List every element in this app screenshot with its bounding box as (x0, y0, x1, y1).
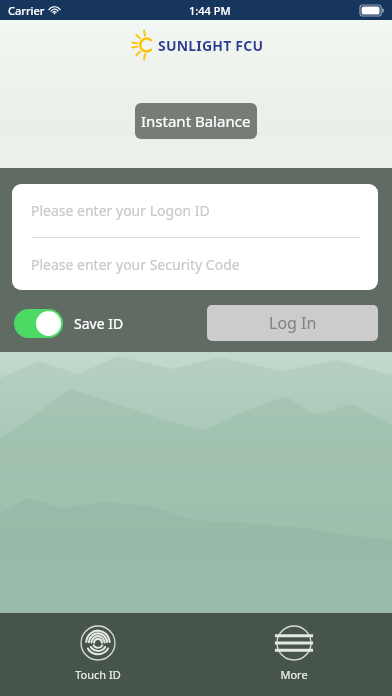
button[interactable]: Save ID (14, 309, 124, 338)
button[interactable]: Please enter your Security Code (12, 238, 378, 290)
staticText: Touch ID (75, 667, 121, 682)
staticText: SUNLIGHT FCU (158, 36, 264, 55)
staticText: 1:44 PM (189, 3, 231, 18)
staticText: More (280, 667, 308, 682)
button[interactable]: Log In (207, 305, 378, 341)
staticText: Please enter your Security Code (31, 255, 240, 274)
button[interactable]: Please enter your Logon ID (12, 184, 378, 237)
staticText: Please enter your Logon ID (31, 201, 210, 220)
staticText: Carrier (8, 3, 45, 18)
staticText: Save ID (74, 314, 124, 333)
staticText: Instant Balance (141, 111, 251, 131)
button[interactable]: More (260, 623, 328, 684)
button[interactable]: Touch ID (59, 623, 137, 684)
staticText: Log In (269, 312, 317, 334)
button[interactable]: Instant Balance (135, 103, 257, 139)
